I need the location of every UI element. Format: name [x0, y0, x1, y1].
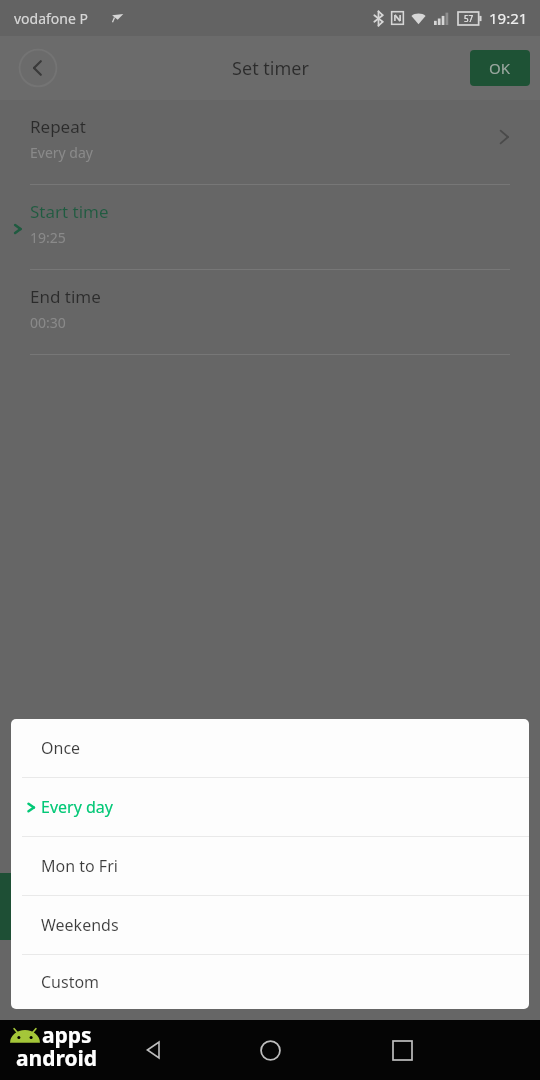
staticText: Weekends [41, 914, 119, 936]
staticText: Start time [30, 200, 109, 223]
staticText: End time [30, 285, 101, 308]
button[interactable]: Every day [11, 778, 529, 836]
button[interactable]: OK [470, 50, 530, 86]
button[interactable]: Recent apps [374, 1022, 430, 1078]
button[interactable]: Start time [0, 185, 540, 269]
staticText: 19:21 [489, 8, 528, 28]
button[interactable]: Once [11, 719, 529, 777]
staticText: Set timer [232, 56, 309, 81]
button[interactable]: Mon to Fri [11, 837, 529, 895]
staticText: Once [41, 737, 81, 759]
staticText: OK [489, 58, 511, 78]
staticText: Every day [30, 143, 93, 162]
button[interactable]: Back [125, 1022, 181, 1078]
button[interactable]: Back [18, 48, 58, 88]
button[interactable]: Custom [11, 955, 529, 1009]
staticText: Custom [41, 971, 100, 993]
button[interactable]: Home [242, 1022, 298, 1078]
staticText: Every day [41, 796, 113, 818]
staticText: Mon to Fri [41, 855, 118, 877]
staticText: Repeat [30, 115, 86, 138]
button[interactable]: End time [0, 270, 540, 354]
staticText: android [16, 1044, 98, 1073]
button[interactable]: Repeat [0, 100, 540, 184]
staticText: 00:30 [30, 313, 66, 332]
button[interactable]: Weekends [11, 896, 529, 954]
staticText: apps [42, 1021, 92, 1050]
staticText: vodafone P [14, 9, 88, 28]
staticText: 57 [464, 13, 474, 24]
staticText: 19:25 [30, 228, 66, 247]
